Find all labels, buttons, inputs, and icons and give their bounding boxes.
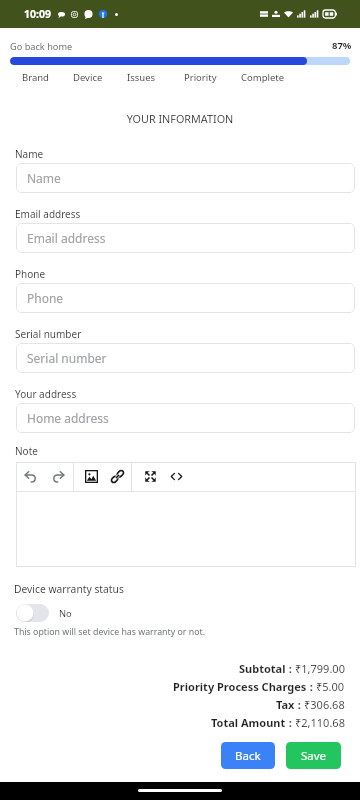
button[interactable]: Home address	[16, 403, 355, 433]
button[interactable]: Insert image	[78, 462, 104, 491]
button[interactable]: Back	[221, 742, 275, 769]
staticText: Your address	[15, 387, 77, 401]
button[interactable]: Name	[16, 163, 355, 193]
staticText: Name	[27, 170, 61, 186]
staticText: Complete	[241, 71, 285, 84]
button[interactable]: Redo	[45, 462, 71, 491]
staticText: 10:09	[24, 7, 51, 21]
staticText: YOUR INFORMATION	[0, 111, 360, 126]
staticText: ₹2,110.68	[295, 715, 345, 730]
staticText: ₹1,799.00	[295, 661, 345, 676]
staticText: ₹306.68	[304, 697, 345, 712]
button[interactable]: Undo	[17, 462, 43, 491]
button[interactable]: Save	[286, 742, 341, 769]
staticText: :	[286, 661, 295, 676]
staticText: Priority Process Charges	[173, 679, 307, 694]
staticText: Phone	[15, 267, 46, 281]
button[interactable]: Device	[73, 71, 103, 84]
staticText: Serial number	[27, 350, 107, 366]
staticText: Priority	[184, 71, 217, 84]
button[interactable]: Insert link	[104, 462, 130, 491]
button[interactable]: Fullscreen	[137, 462, 163, 491]
staticText: This option will set device has warranty…	[14, 626, 206, 638]
button[interactable]: Serial number	[16, 343, 355, 373]
button[interactable]: Source code	[163, 462, 189, 491]
staticText: ₹5.00	[316, 679, 345, 694]
button[interactable]	[16, 604, 49, 622]
staticText: Email address	[27, 230, 106, 246]
staticText: Total Amount	[211, 715, 286, 730]
staticText: 87%	[332, 39, 352, 52]
staticText: Note	[15, 444, 38, 458]
staticText: :	[295, 697, 304, 712]
staticText: Device warranty status	[14, 582, 124, 596]
button[interactable]: Brand	[22, 71, 49, 84]
button[interactable]: Priority	[184, 71, 217, 84]
staticText: Subtotal	[239, 661, 286, 676]
staticText: Brand	[22, 71, 49, 84]
staticText: :	[307, 679, 316, 694]
staticText: Email address	[15, 207, 81, 221]
staticText: Issues	[127, 71, 156, 84]
staticText: Phone	[27, 290, 64, 306]
button[interactable]: Email address	[16, 223, 355, 253]
button[interactable]: Issues	[127, 71, 156, 84]
staticText: No	[59, 607, 72, 620]
button[interactable]: Complete	[241, 71, 285, 84]
button[interactable]: Phone	[16, 283, 355, 313]
staticText: Tax	[276, 697, 295, 712]
staticText: Back	[235, 748, 261, 764]
staticText: Serial number	[15, 327, 82, 341]
button[interactable]: Go back home	[10, 40, 73, 53]
staticText: Name	[15, 147, 44, 161]
staticText: Device	[73, 71, 103, 84]
staticText: :	[286, 715, 295, 730]
staticText: Home address	[27, 410, 109, 426]
staticText: Save	[301, 748, 327, 764]
